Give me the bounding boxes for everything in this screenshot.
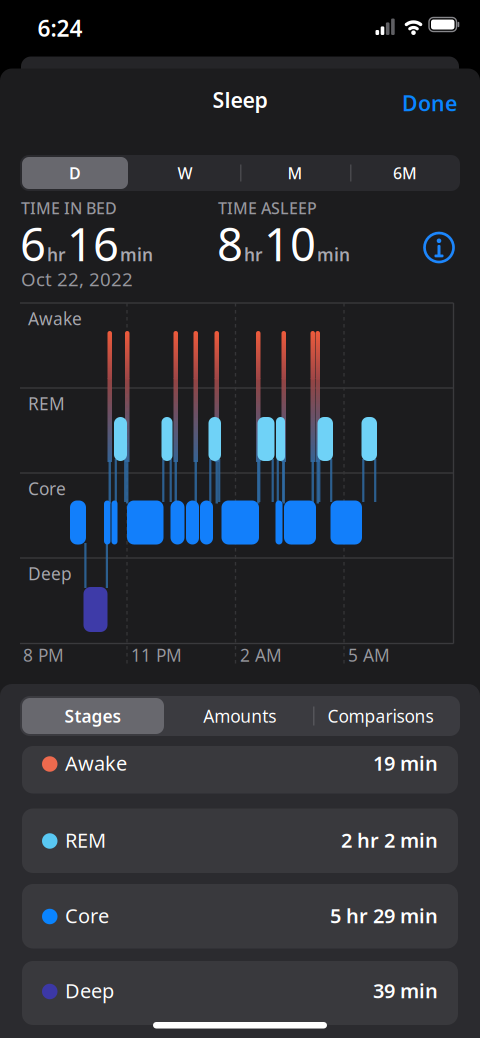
staticText: 6:24 [37,13,82,43]
staticText: Sleep [212,85,267,114]
button[interactable]: Comparisons [307,696,453,736]
staticText: 10 [264,213,316,274]
button[interactable] [423,232,453,262]
staticText: REM [28,392,65,415]
staticText: TIME ASLEEP [218,197,317,219]
staticText: Core [28,477,66,500]
staticText: Awake [65,750,127,776]
staticText: 16 [67,213,119,274]
staticText: D [69,162,81,184]
staticText: Oct 22, 2022 [21,266,133,291]
staticText: 6M [393,162,417,184]
button[interactable]: Stages [22,698,164,734]
staticText: 11 PM [131,643,182,666]
button[interactable]: M [240,155,350,191]
staticText: 6 [20,213,46,274]
staticText: 19 min [373,750,438,776]
button[interactable]: W [130,155,240,191]
staticText: M [287,162,302,184]
button[interactable]: Amounts [167,696,313,736]
button[interactable]: Awake [22,746,458,793]
staticText: 2 AM [240,643,282,666]
button[interactable]: D [22,157,128,189]
staticText: Comparisons [327,704,433,727]
staticText: min [317,243,350,266]
staticText: Deep [28,562,72,585]
staticText: 8 PM [23,643,64,666]
button[interactable]: 6M [350,155,460,191]
staticText: 2 hr 2 min [341,827,438,853]
staticText: Core [65,902,109,929]
staticText: Done [402,89,457,117]
button[interactable]: REM [22,808,458,873]
staticText: hr [47,243,66,266]
button[interactable]: Core [22,884,458,948]
staticText: REM [65,827,106,853]
staticText: Deep [65,977,114,1004]
staticText: min [120,243,153,266]
staticText: TIME IN BED [21,197,117,219]
staticText: W [177,162,192,184]
staticText: 5 hr 29 min [330,902,438,929]
button[interactable]: Done [367,86,457,120]
staticText: hr [244,243,263,266]
staticText: 8 [217,213,243,274]
staticText: Stages [64,704,121,727]
staticText: 5 AM [348,643,390,666]
staticText: Amounts [203,704,276,727]
button[interactable]: Deep [22,961,458,1025]
staticText: Awake [28,307,82,330]
staticText: 39 min [373,977,438,1004]
